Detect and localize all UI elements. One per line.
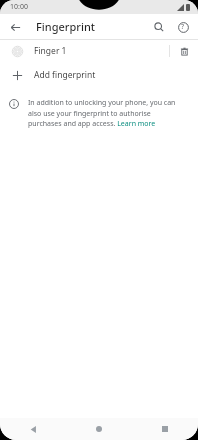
staticText: ?	[181, 22, 185, 32]
button[interactable]: Back	[6, 18, 24, 36]
button[interactable]: Add fingerprint	[0, 62, 198, 88]
staticText: 10:00	[10, 2, 28, 12]
button[interactable]: Delete fingerprint	[176, 43, 192, 59]
button[interactable]: Search	[150, 18, 168, 36]
button[interactable]: Home	[66, 418, 132, 440]
staticText: Finger 1	[34, 45, 67, 57]
staticText: In addition to unlocking your phone, you…	[28, 98, 186, 128]
staticText: Add fingerprint	[34, 69, 96, 81]
button[interactable]: Back	[0, 418, 66, 440]
button[interactable]: Recents	[132, 418, 198, 440]
staticText: Fingerprint	[36, 19, 96, 34]
button[interactable]: Finger 1	[0, 40, 198, 62]
button[interactable]: Help	[174, 18, 192, 36]
